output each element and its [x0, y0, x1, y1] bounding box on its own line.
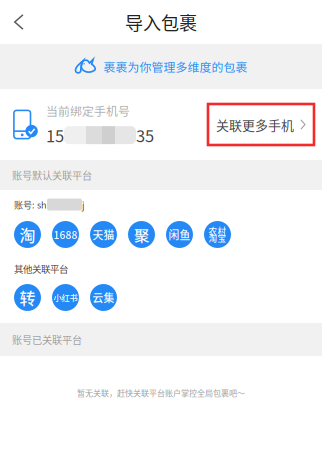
button[interactable]: 云集 [90, 284, 117, 311]
staticText: 导入包裹 [125, 9, 197, 35]
staticText: 账号: sh [14, 198, 47, 211]
staticText: 农村 [208, 225, 226, 237]
staticText: 其他关联平台 [14, 262, 68, 275]
staticText: 账号默认关联平台 [12, 168, 92, 182]
staticText: 暂无关联，赶快关联平台账户掌控全局包裹吧～ [77, 387, 245, 399]
staticText: 小红书 [53, 291, 77, 303]
staticText: 淘宝 [208, 232, 226, 244]
staticText: j [82, 198, 85, 211]
staticText: 关联更多手机 [216, 115, 294, 134]
staticText: 转 [19, 286, 35, 309]
staticText: 天猫 [92, 227, 114, 242]
button[interactable]: 1688 [52, 221, 79, 248]
button[interactable]: 转 [14, 284, 41, 311]
button[interactable]: 聚 [128, 221, 155, 248]
button[interactable]: 天猫 [90, 221, 117, 248]
button[interactable]: 闲鱼 [166, 221, 193, 248]
staticText: 裹裹为你管理多维度的包裹 [103, 58, 247, 75]
staticText: 35 [136, 123, 154, 147]
button[interactable]: 淘 [14, 221, 41, 248]
button[interactable]: 小红书 [52, 284, 79, 311]
button[interactable]: 关联更多手机 [208, 104, 314, 145]
button[interactable]: 农村 [204, 221, 231, 248]
staticText: 云集 [92, 290, 114, 305]
staticText: 15 [46, 123, 64, 147]
staticText: 1688 [53, 227, 77, 242]
button[interactable]: 返回 [0, 0, 38, 44]
staticText: 账号已关联平台 [12, 332, 82, 347]
staticText: 聚 [134, 223, 149, 246]
staticText: 当前绑定手机号 [46, 102, 130, 119]
staticText: 闲鱼 [168, 227, 190, 242]
staticText: 淘 [19, 223, 35, 246]
